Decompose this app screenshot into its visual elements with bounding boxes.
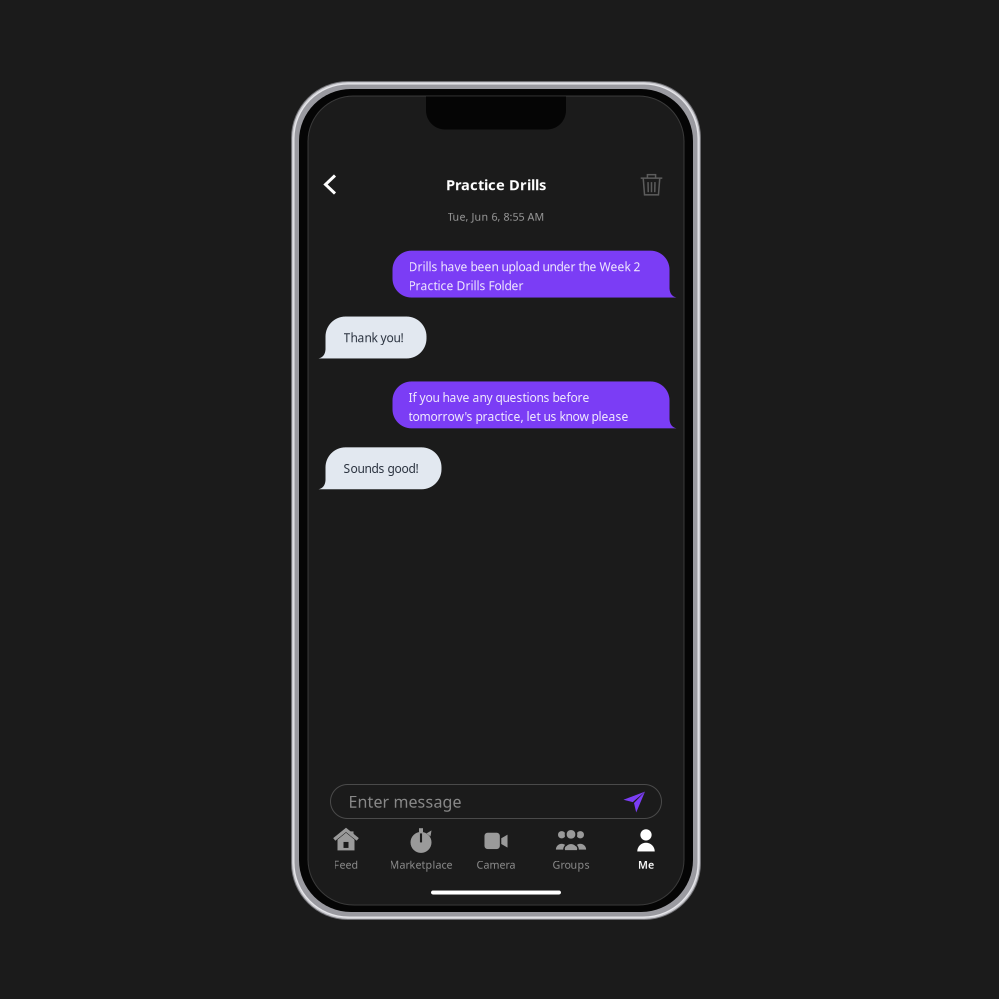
button[interactable]: Camera	[458, 827, 533, 872]
staticText: Feed	[333, 857, 358, 872]
staticText: tomorrow's practice, let us know please	[408, 408, 628, 424]
staticText: Thank you!	[343, 329, 403, 345]
button[interactable]: Groups	[533, 827, 608, 872]
button[interactable]: Back	[311, 164, 349, 204]
staticText: Enter message	[348, 791, 461, 812]
staticText: Groups	[552, 857, 589, 872]
button[interactable]: Feed	[308, 827, 383, 872]
staticText: Practice Drills Folder	[408, 278, 523, 293]
staticText: Practice Drills	[446, 175, 546, 194]
staticText: Sounds good!	[343, 460, 418, 476]
button[interactable]: Send	[606, 784, 661, 818]
button[interactable]: Enter message	[330, 784, 606, 818]
button[interactable]: Me	[608, 827, 683, 872]
staticText: Marketplace	[389, 857, 452, 872]
staticText: Drills have been upload under the Week 2	[408, 259, 640, 275]
button[interactable]: Marketplace	[383, 827, 458, 872]
staticText: Me	[638, 857, 654, 872]
staticText: Tue, Jun 6, 8:55 AM	[447, 209, 544, 224]
staticText: Camera	[476, 857, 515, 872]
button[interactable]: Delete conversation	[632, 164, 670, 204]
staticText: If you have any questions before	[408, 389, 589, 405]
